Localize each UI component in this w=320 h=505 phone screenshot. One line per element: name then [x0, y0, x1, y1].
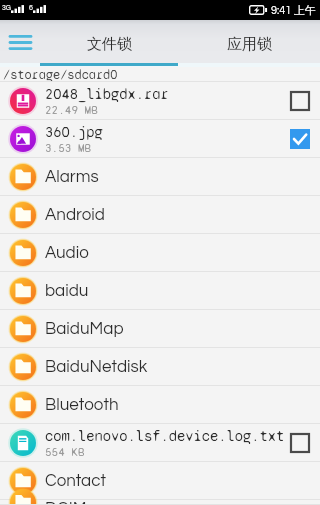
button[interactable]: Android — [0, 196, 320, 234]
button[interactable]: Bluetooth — [0, 386, 320, 424]
staticText: Android — [45, 206, 105, 224]
button[interactable]: com.lenovo.lsf.device.log.txt — [0, 424, 320, 462]
staticText: com.lenovo.lsf.device.log.txt — [45, 427, 285, 445]
button[interactable]: DCIM — [0, 500, 320, 505]
staticText: 3G — [2, 4, 11, 11]
staticText: Alarms — [45, 168, 99, 186]
staticText: 554 KB — [45, 445, 85, 459]
staticText: 3.53 MB — [45, 141, 92, 155]
staticText: 2048_libgdx.rar — [45, 85, 169, 103]
staticText: baidu — [45, 282, 89, 300]
button[interactable]: 360.jpg — [0, 120, 320, 158]
button[interactable]: BaiduMap — [0, 310, 320, 348]
button[interactable]: Contact — [0, 462, 320, 500]
button[interactable]: Alarms — [0, 158, 320, 196]
staticText: 6 — [29, 4, 33, 11]
staticText: Audio — [45, 244, 89, 262]
staticText: Bluetooth — [45, 396, 119, 414]
button[interactable]: 应用锁 — [178, 26, 320, 63]
staticText: DCIM — [45, 500, 87, 505]
staticText: BaiduNetdisk — [45, 358, 148, 376]
staticText: BaiduMap — [45, 320, 124, 338]
button[interactable]: baidu — [0, 272, 320, 310]
staticText: 360.jpg — [45, 123, 103, 141]
button[interactable]: 文件锁 — [40, 26, 178, 63]
button[interactable]: BaiduNetdisk — [0, 348, 320, 386]
button[interactable]: Audio — [0, 234, 320, 272]
staticText: Contact — [45, 472, 107, 490]
staticText: 文件锁 — [87, 35, 132, 54]
staticText: /storage/sdcard0 — [3, 67, 118, 82]
staticText: 应用锁 — [227, 35, 272, 54]
button[interactable]: Not selected — [286, 429, 314, 457]
staticText: 9:41 上午 — [271, 3, 316, 17]
staticText: 22.49 MB — [45, 103, 98, 117]
button[interactable]: Menu — [0, 22, 40, 62]
button[interactable]: Not selected — [286, 87, 314, 115]
button[interactable]: 2048_libgdx.rar — [0, 82, 320, 120]
button[interactable]: Selected — [286, 125, 314, 153]
